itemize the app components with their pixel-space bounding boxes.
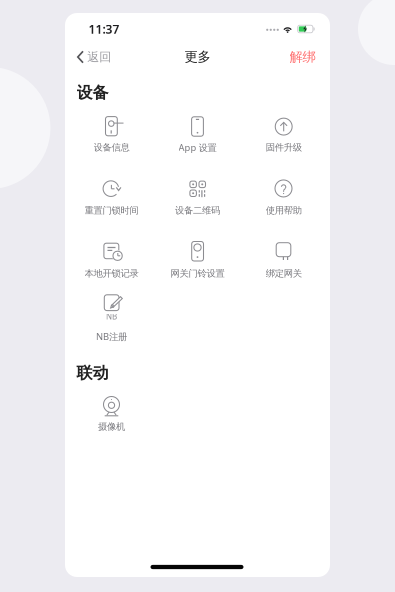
staticText: NB注册 — [96, 330, 127, 343]
staticText: App 设置 — [178, 141, 216, 154]
staticText: 重置门锁时间 — [84, 205, 138, 216]
staticText: 本地开锁记录 — [84, 268, 138, 279]
button[interactable]: 使用帮助 — [65, 13, 330, 577]
button[interactable]: 绑定网关 — [65, 13, 330, 577]
staticText: 联动 — [76, 363, 108, 383]
staticText: 返回 — [87, 50, 111, 64]
staticText: 摄像机 — [98, 421, 125, 432]
staticText: 更多 — [184, 48, 210, 65]
button[interactable]: 重置门锁时间 — [65, 13, 330, 577]
button[interactable]: 返回 — [66, 44, 120, 70]
button[interactable]: 网关门铃设置 — [65, 13, 330, 577]
staticText: 11:37 — [89, 21, 120, 37]
button[interactable]: App 设置 — [65, 13, 330, 577]
staticText: 使用帮助 — [266, 205, 302, 216]
button[interactable]: 本地开锁记录 — [65, 13, 330, 577]
button[interactable]: 固件升级 — [65, 13, 330, 577]
staticText: 网关门铃设置 — [170, 268, 224, 279]
button[interactable]: 设备二维码 — [65, 13, 330, 577]
button[interactable]: NB — [65, 13, 330, 577]
staticText: 绑定网关 — [266, 268, 302, 279]
button[interactable]: 解绑 — [279, 44, 331, 70]
staticText: 解绑 — [289, 49, 315, 65]
button[interactable]: 设备信息 — [65, 13, 330, 577]
staticText: NB — [106, 311, 117, 322]
staticText: 设备二维码 — [175, 205, 220, 216]
staticText: 设备信息 — [93, 142, 129, 153]
staticText: 固件升级 — [266, 142, 302, 153]
button[interactable]: 摄像机 — [65, 13, 330, 577]
staticText: 设备 — [77, 83, 109, 102]
